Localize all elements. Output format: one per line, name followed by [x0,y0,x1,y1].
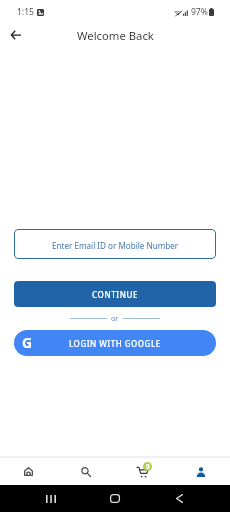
staticText: 97% [191,6,208,18]
button[interactable]: Back [5,24,27,46]
staticText: G [22,333,32,352]
button[interactable]: CONTINUE [14,281,216,307]
staticText: 1:15 [17,6,34,18]
button[interactable]: Back [165,489,194,508]
staticText: Enter Email ID or Mobile Number [52,240,179,251]
staticText: Welcome Back [77,28,154,43]
button[interactable]: Cart [114,458,172,485]
staticText: CONTINUE [92,289,139,300]
button[interactable]: Recent apps [36,489,65,508]
button[interactable]: Profile [172,458,230,485]
staticText: or [111,313,119,323]
button[interactable]: LOGIN WITH GOOGLE [14,330,216,356]
button[interactable]: Home [0,458,57,485]
staticText: LOGIN WITH GOOGLE [69,338,161,349]
staticText: 0 [146,462,150,471]
button[interactable]: Home [100,489,129,508]
button[interactable]: Search [57,458,114,485]
button[interactable]: Enter Email ID or Mobile Number [14,229,216,259]
